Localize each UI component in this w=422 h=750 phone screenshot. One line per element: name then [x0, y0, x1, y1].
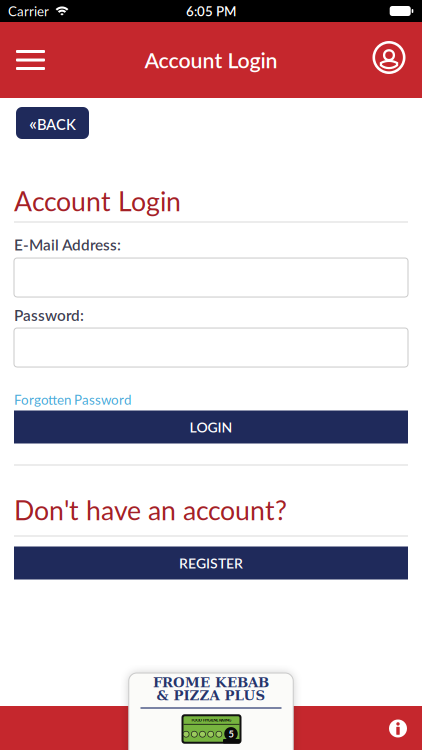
button[interactable]: Account [372, 43, 422, 77]
staticText: FROME KEBAB [153, 675, 269, 690]
button[interactable]: Menu [0, 40, 45, 80]
staticText: Carrier [8, 3, 49, 19]
staticText: E-Mail Address: [14, 235, 121, 254]
staticText: FOOD HYGIENE RATING [191, 718, 232, 722]
staticText: Don't have an account? [14, 494, 287, 526]
staticText: LOGIN [189, 419, 232, 435]
staticText: & PIZZA PLUS [156, 688, 265, 703]
staticText: REGISTER [179, 555, 243, 571]
staticText: Password: [14, 306, 84, 324]
button[interactable]: «BACK [16, 107, 89, 139]
staticText: Account Login [14, 185, 181, 217]
button[interactable]: REGISTER [14, 546, 408, 579]
staticText: Account Login [144, 47, 277, 73]
button[interactable]: Info [386, 716, 410, 740]
staticText: Forgotten Password [14, 391, 131, 407]
button[interactable]: LOGIN [14, 410, 408, 443]
staticText: 6:05 PM [186, 3, 236, 19]
staticText: 5 [228, 728, 233, 739]
staticText: «BACK [29, 112, 76, 134]
button[interactable]: Forgotten Password [14, 391, 131, 407]
